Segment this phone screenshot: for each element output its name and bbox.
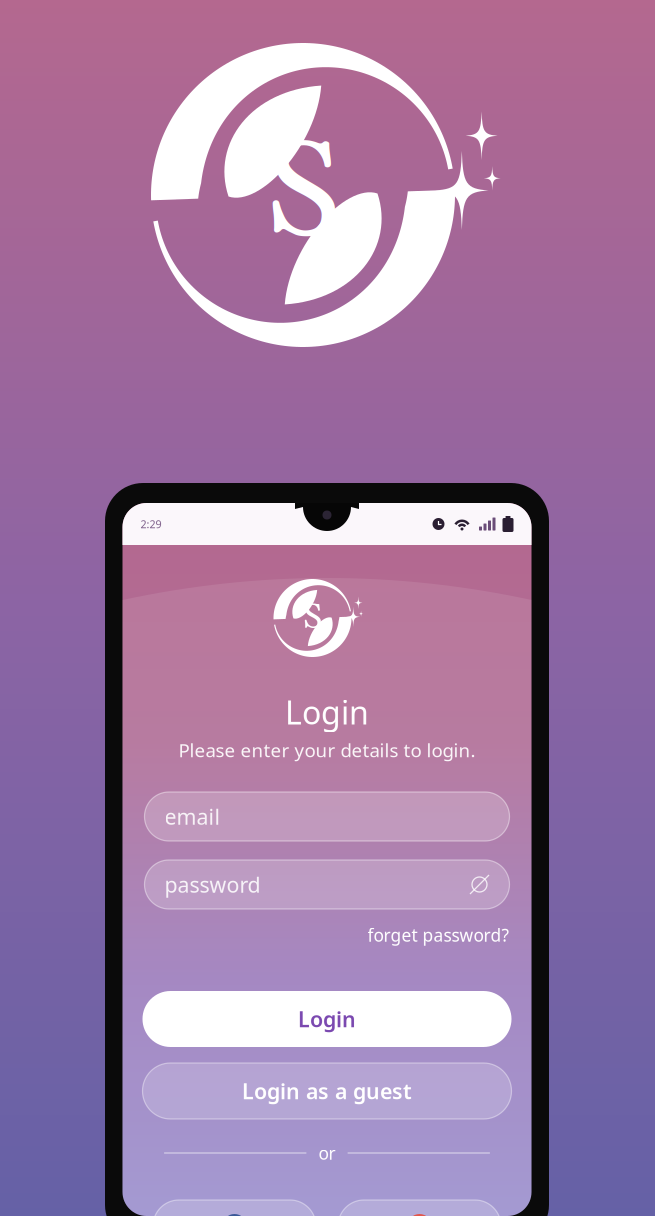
- staticText: or: [318, 1141, 335, 1164]
- staticText: 2:29: [140, 517, 161, 531]
- staticText: password: [164, 870, 260, 899]
- staticText: email: [164, 802, 220, 831]
- staticText: Login as a guest: [242, 1077, 412, 1105]
- staticText: forget password?: [367, 923, 509, 946]
- button[interactable]: password: [144, 860, 509, 909]
- staticText: S: [265, 110, 340, 280]
- button[interactable]: Login as a guest: [142, 1063, 511, 1119]
- button[interactable]: Continue with Facebook: [153, 1200, 316, 1216]
- staticText: Please enter your details to login.: [178, 738, 475, 762]
- staticText: Login: [298, 1005, 356, 1033]
- button[interactable]: Continue with Google: [338, 1200, 501, 1216]
- button[interactable]: email: [144, 792, 509, 841]
- button[interactable]: forget password?: [367, 923, 509, 946]
- staticText: S: [303, 596, 322, 640]
- staticText: Login: [285, 691, 369, 733]
- button[interactable]: Login: [142, 991, 511, 1047]
